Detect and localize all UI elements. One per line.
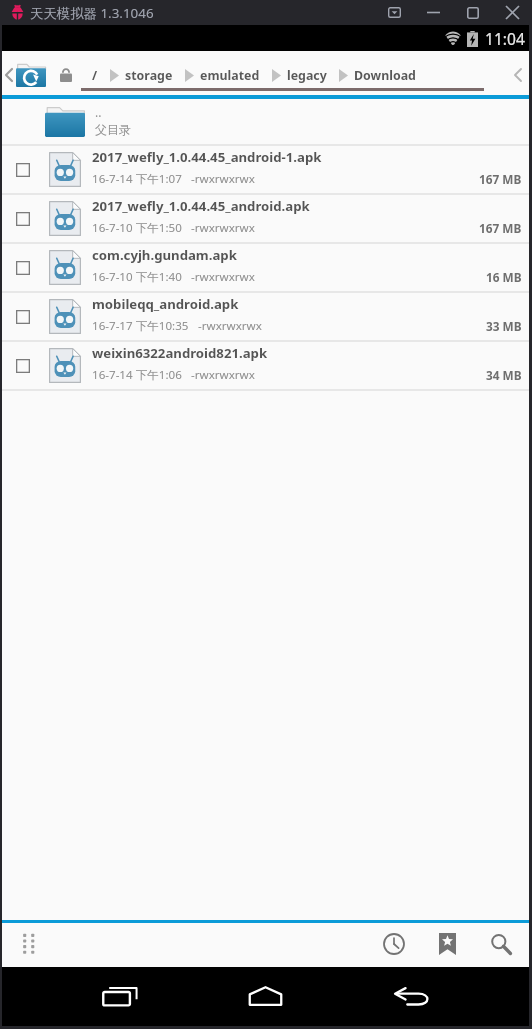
staticText: weixin6322android821.apk: [92, 344, 268, 362]
staticText: 2017_wefly_1.0.44.45_android.apk: [92, 197, 310, 215]
staticText: -rwxrwxrwx: [191, 367, 255, 383]
staticText: -rwxrwxrwx: [191, 220, 255, 236]
button[interactable]: Select weixin6322android821.apk: [16, 359, 30, 373]
staticText: 16-7-10 下午1:50: [92, 220, 182, 236]
button[interactable]: Permissions: [60, 62, 72, 88]
button[interactable]: Close: [492, 0, 532, 25]
staticText: emulated: [200, 67, 260, 84]
button[interactable]: Search: [480, 923, 524, 964]
button[interactable]: Select 2017_wefly_1.0.44.45_android.apk: [2, 195, 529, 244]
staticText: mobileqq_android.apk: [92, 295, 239, 313]
staticText: 16-7-14 下午1:06: [92, 367, 182, 383]
button[interactable]: Select mobileqq_android.apk: [16, 310, 30, 324]
staticText: 父目录: [95, 122, 131, 137]
button[interactable]: Select mobileqq_android.apk: [2, 293, 529, 342]
button[interactable]: ..: [2, 99, 529, 146]
button[interactable]: Minimise: [414, 0, 453, 25]
staticText: 天天模拟器 1.3.1046: [30, 4, 154, 22]
staticText: 16 MB: [486, 269, 522, 285]
staticText: 33 MB: [486, 318, 522, 334]
button[interactable]: emulated: [200, 62, 260, 88]
button[interactable]: Refresh: [15, 62, 47, 88]
button[interactable]: Up: [2, 62, 15, 88]
staticText: ..: [95, 104, 102, 120]
button[interactable]: Select 2017_wefly_1.0.44.45_android-1.ap…: [2, 146, 529, 195]
staticText: 16-7-10 下午1:40: [92, 269, 182, 285]
staticText: com.cyjh.gundam.apk: [92, 246, 237, 264]
staticText: -rwxrwxrwx: [191, 269, 255, 285]
staticText: 167 MB: [479, 220, 522, 236]
button[interactable]: Recent apps: [79, 971, 151, 1021]
staticText: storage: [125, 67, 173, 84]
button[interactable]: Home: [229, 971, 301, 1021]
button[interactable]: History: [369, 923, 413, 964]
button[interactable]: Select 2017_wefly_1.0.44.45_android.apk: [16, 212, 30, 226]
staticText: legacy: [287, 67, 327, 84]
staticText: Download: [354, 67, 416, 84]
button[interactable]: Select com.cyjh.gundam.apk: [2, 244, 529, 293]
staticText: 16-7-17 下午10:35: [92, 318, 189, 334]
staticText: 2017_wefly_1.0.44.45_android-1.apk: [92, 148, 322, 166]
button[interactable]: /: [92, 62, 98, 88]
button[interactable]: Maximise: [453, 0, 492, 25]
staticText: 167 MB: [479, 171, 522, 187]
button[interactable]: Select weixin6322android821.apk: [2, 342, 529, 391]
button[interactable]: Restore down: [374, 0, 414, 25]
button[interactable]: Drag handle: [2, 923, 43, 964]
button[interactable]: Select 2017_wefly_1.0.44.45_android-1.ap…: [16, 163, 30, 177]
button[interactable]: Scroll left: [506, 62, 529, 88]
button[interactable]: Download: [354, 62, 416, 88]
button[interactable]: legacy: [287, 62, 327, 88]
staticText: 11:04: [485, 28, 525, 49]
staticText: /: [92, 67, 98, 84]
staticText: -rwxrwxrwx: [191, 171, 255, 187]
staticText: 34 MB: [486, 367, 522, 383]
staticText: -rwxrwxrwx: [198, 318, 262, 334]
button[interactable]: storage: [125, 62, 173, 88]
button[interactable]: Select com.cyjh.gundam.apk: [16, 261, 30, 275]
staticText: 16-7-14 下午1:07: [92, 171, 182, 187]
button[interactable]: Back: [379, 971, 451, 1021]
button[interactable]: Bookmarks: [424, 923, 468, 964]
